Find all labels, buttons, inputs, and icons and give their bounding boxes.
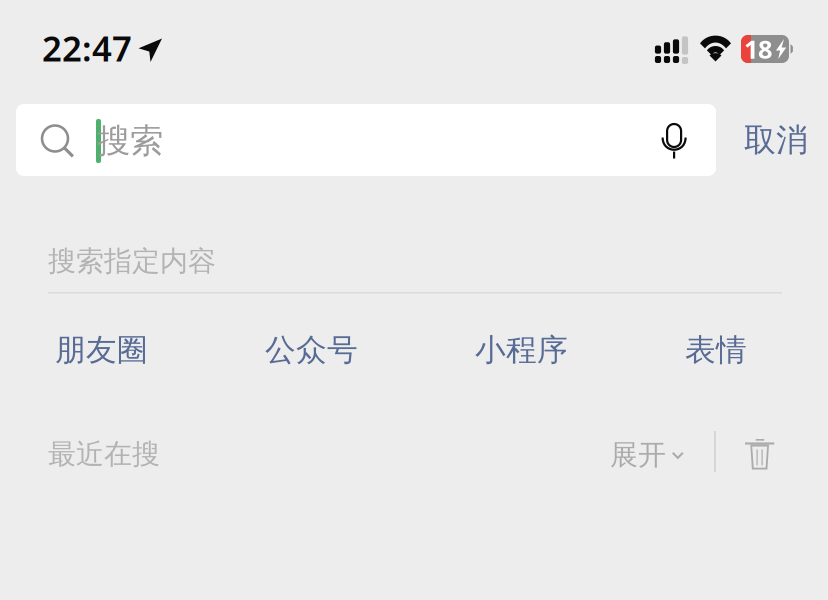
staticText: 小程序 bbox=[475, 331, 568, 369]
button[interactable]: 搜索 bbox=[16, 104, 716, 176]
button[interactable]: 小程序 bbox=[475, 324, 613, 376]
staticText: 搜索指定内容 bbox=[48, 244, 216, 278]
staticText: 22:47 bbox=[42, 25, 132, 71]
staticText: 公众号 bbox=[265, 331, 358, 369]
staticText: 最近在搜 bbox=[48, 437, 160, 471]
staticText: 18 bbox=[744, 32, 772, 66]
button[interactable]: 展开 bbox=[600, 427, 699, 483]
button[interactable]: 语音搜索 bbox=[645, 104, 705, 176]
staticText: 展开 bbox=[610, 438, 666, 472]
button[interactable]: 表情 bbox=[685, 324, 823, 376]
staticText: 取消 bbox=[744, 120, 808, 160]
button[interactable]: 清空搜索历史 bbox=[729, 421, 794, 477]
staticText: 搜索 bbox=[97, 120, 163, 161]
button[interactable]: 朋友圈 bbox=[55, 324, 193, 376]
button[interactable]: 取消 bbox=[728, 104, 824, 176]
staticText: 朋友圈 bbox=[55, 331, 148, 369]
button[interactable]: 公众号 bbox=[265, 324, 403, 376]
staticText: 表情 bbox=[685, 331, 747, 369]
